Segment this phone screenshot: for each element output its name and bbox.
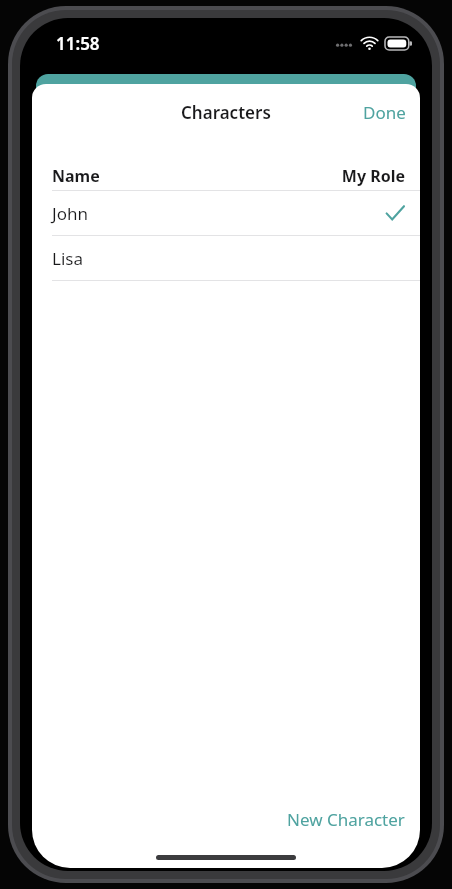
staticText: Done [363, 101, 406, 124]
staticText: My Role [341, 165, 405, 187]
button[interactable]: Done [349, 91, 420, 134]
button[interactable]: John [32, 191, 420, 235]
button[interactable]: Lisa [32, 236, 420, 280]
staticText: New Character [287, 808, 405, 831]
staticText: 11:58 [56, 32, 100, 55]
staticText: John [52, 202, 88, 225]
staticText: Name [52, 165, 100, 187]
other: Selected [385, 203, 405, 223]
button[interactable]: New Character [272, 796, 420, 843]
staticText: Characters [181, 101, 271, 124]
staticText: Lisa [52, 247, 83, 270]
